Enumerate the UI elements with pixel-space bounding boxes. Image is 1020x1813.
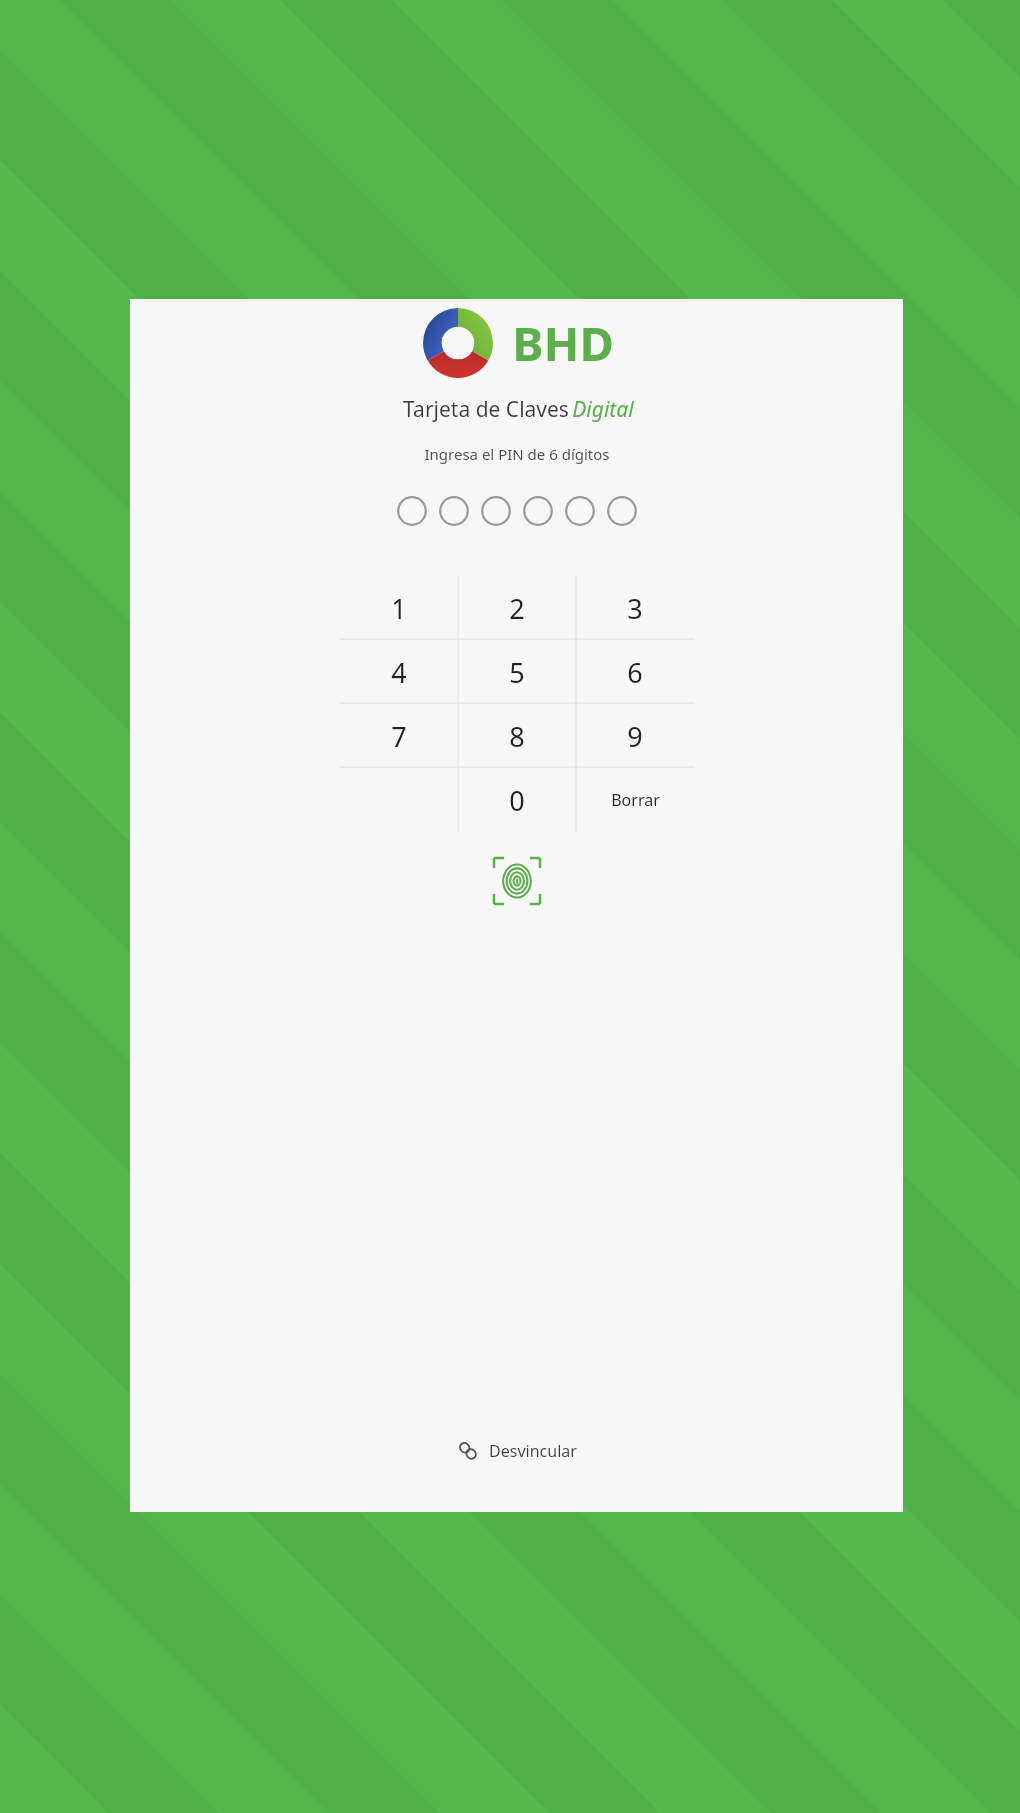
- button[interactable]: 1: [340, 576, 458, 640]
- button[interactable]: 5: [458, 640, 576, 704]
- staticText: BHD: [512, 311, 614, 375]
- button[interactable]: 6: [576, 640, 694, 704]
- button[interactable]: 0: [458, 768, 576, 832]
- staticText: 4: [391, 654, 407, 691]
- button[interactable]: 2: [458, 576, 576, 640]
- button[interactable]: Desvincular: [443, 1432, 591, 1470]
- button[interactable]: 8: [458, 704, 576, 768]
- button[interactable]: 4: [340, 640, 458, 704]
- button[interactable]: 9: [576, 704, 694, 768]
- staticText: Desvincular: [489, 1440, 577, 1462]
- staticText: 7: [391, 718, 407, 755]
- staticText: Tarjeta de Claves: [400, 395, 572, 424]
- staticText: 6: [627, 654, 643, 691]
- staticText: 3: [627, 590, 643, 627]
- button[interactable]: 7: [340, 704, 458, 768]
- button[interactable]: Huella digital: [490, 854, 544, 908]
- staticText: 2: [509, 590, 525, 627]
- staticText: 5: [509, 654, 525, 691]
- button[interactable]: Borrar: [576, 768, 694, 832]
- button[interactable]: 3: [576, 576, 694, 640]
- staticText: 0: [509, 782, 525, 819]
- staticText: Digital: [572, 395, 634, 424]
- staticText: Borrar: [611, 789, 660, 811]
- staticText: 9: [627, 718, 643, 755]
- staticText: 1: [391, 590, 407, 627]
- staticText: Ingresa el PIN de 6 dígitos: [424, 444, 610, 464]
- staticText: 8: [509, 718, 525, 755]
